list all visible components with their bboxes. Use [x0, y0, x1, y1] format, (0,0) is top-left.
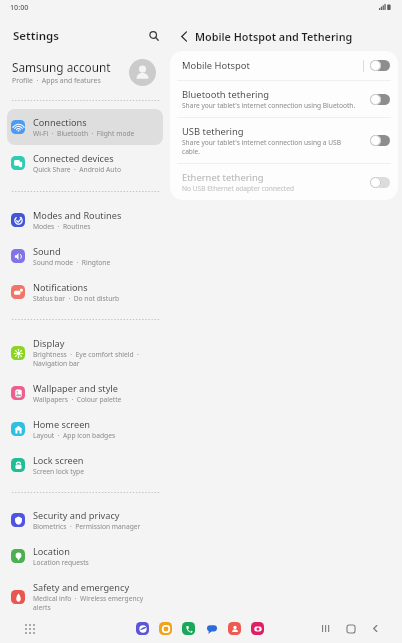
button[interactable]: [159, 622, 172, 635]
staticText: Security and privacy: [33, 509, 120, 522]
button[interactable]: Back: [173, 25, 195, 47]
button[interactable]: Bluetooth tethering: [170, 81, 398, 117]
button[interactable]: Security and privacy: [7, 502, 163, 538]
button[interactable]: [136, 622, 149, 635]
button[interactable]: Safety and emergency: [7, 574, 163, 619]
staticText: Connections: [33, 116, 87, 129]
staticText: Modes and Routines: [33, 209, 122, 222]
button[interactable]: Sound: [7, 238, 163, 274]
button[interactable]: Connections: [7, 109, 163, 145]
staticText: Location: [33, 545, 70, 558]
button[interactable]: Wallpaper and style: [7, 375, 163, 411]
button[interactable]: USB tethering: [170, 118, 398, 163]
button[interactable]: Mobile Hotspot: [170, 51, 398, 80]
staticText: Notifications: [33, 281, 88, 294]
button[interactable]: Samsung account: [0, 49, 168, 95]
staticText: Display: [33, 337, 65, 350]
button[interactable]: Notifications: [7, 274, 163, 310]
button[interactable]: Recents: [319, 622, 332, 635]
button[interactable]: Location: [7, 538, 163, 574]
staticText: Modes · Routines: [33, 222, 91, 231]
button[interactable]: Toggle Mobile Hotspot: [370, 60, 390, 71]
staticText: Wi-Fi · Bluetooth · Flight mode: [33, 129, 135, 138]
staticText: 10:00: [10, 2, 29, 12]
button[interactable]: [251, 622, 264, 635]
staticText: Lock screen: [33, 454, 84, 467]
staticText: Connected devices: [33, 152, 114, 165]
staticText: Medical info · Wireless emergency alerts: [33, 594, 145, 612]
staticText: Safety and emergency: [33, 581, 130, 594]
staticText: Sound mode · Ringtone: [33, 258, 111, 267]
button[interactable]: Ethernet tethering: [170, 164, 398, 200]
staticText: Screen lock type: [33, 467, 84, 476]
staticText: Sound: [33, 245, 61, 258]
staticText: Wallpaper and style: [33, 382, 118, 395]
button[interactable]: Toggle USB tethering: [370, 135, 390, 146]
staticText: Status bar · Do not disturb: [33, 294, 120, 303]
button[interactable]: Toggle Ethernet tethering: [370, 177, 390, 188]
staticText: Layout · App icon badges: [33, 431, 116, 440]
staticText: No USB Ethernet adapter connected: [182, 184, 294, 193]
staticText: Ethernet tethering: [182, 171, 264, 184]
button[interactable]: Modes and Routines: [7, 202, 163, 238]
button[interactable]: Home: [344, 622, 357, 635]
staticText: USB tethering: [182, 125, 244, 138]
button[interactable]: Display: [7, 330, 163, 375]
staticText: Biometrics · Permission manager: [33, 522, 141, 531]
button[interactable]: Apps: [22, 621, 38, 637]
button[interactable]: [228, 622, 241, 635]
button[interactable]: Toggle Bluetooth tethering: [370, 94, 390, 105]
button[interactable]: Search: [143, 25, 165, 47]
button[interactable]: Home screen: [7, 411, 163, 447]
staticText: Profile · Apps and features: [12, 76, 101, 85]
staticText: Mobile Hotspot and Tethering: [195, 29, 353, 44]
button[interactable]: [182, 622, 195, 635]
staticText: Home screen: [33, 418, 90, 431]
staticText: Bluetooth tethering: [182, 88, 270, 101]
staticText: Location requests: [33, 558, 89, 567]
staticText: Samsung account: [12, 59, 111, 75]
staticText: Share your tablet's internet connection …: [182, 101, 356, 110]
button[interactable]: Lock screen: [7, 447, 163, 483]
button[interactable]: Connected devices: [7, 145, 163, 181]
staticText: Mobile Hotspot: [182, 59, 250, 72]
staticText: Brightness · Eye comfort shield · Naviga…: [33, 350, 145, 368]
staticText: Settings: [13, 28, 59, 44]
staticText: Share your tablet's internet connection …: [182, 138, 360, 156]
button[interactable]: Back: [369, 622, 382, 635]
button[interactable]: [205, 622, 218, 635]
staticText: Wallpapers · Colour palette: [33, 395, 122, 404]
staticText: Quick Share · Android Auto: [33, 165, 121, 174]
